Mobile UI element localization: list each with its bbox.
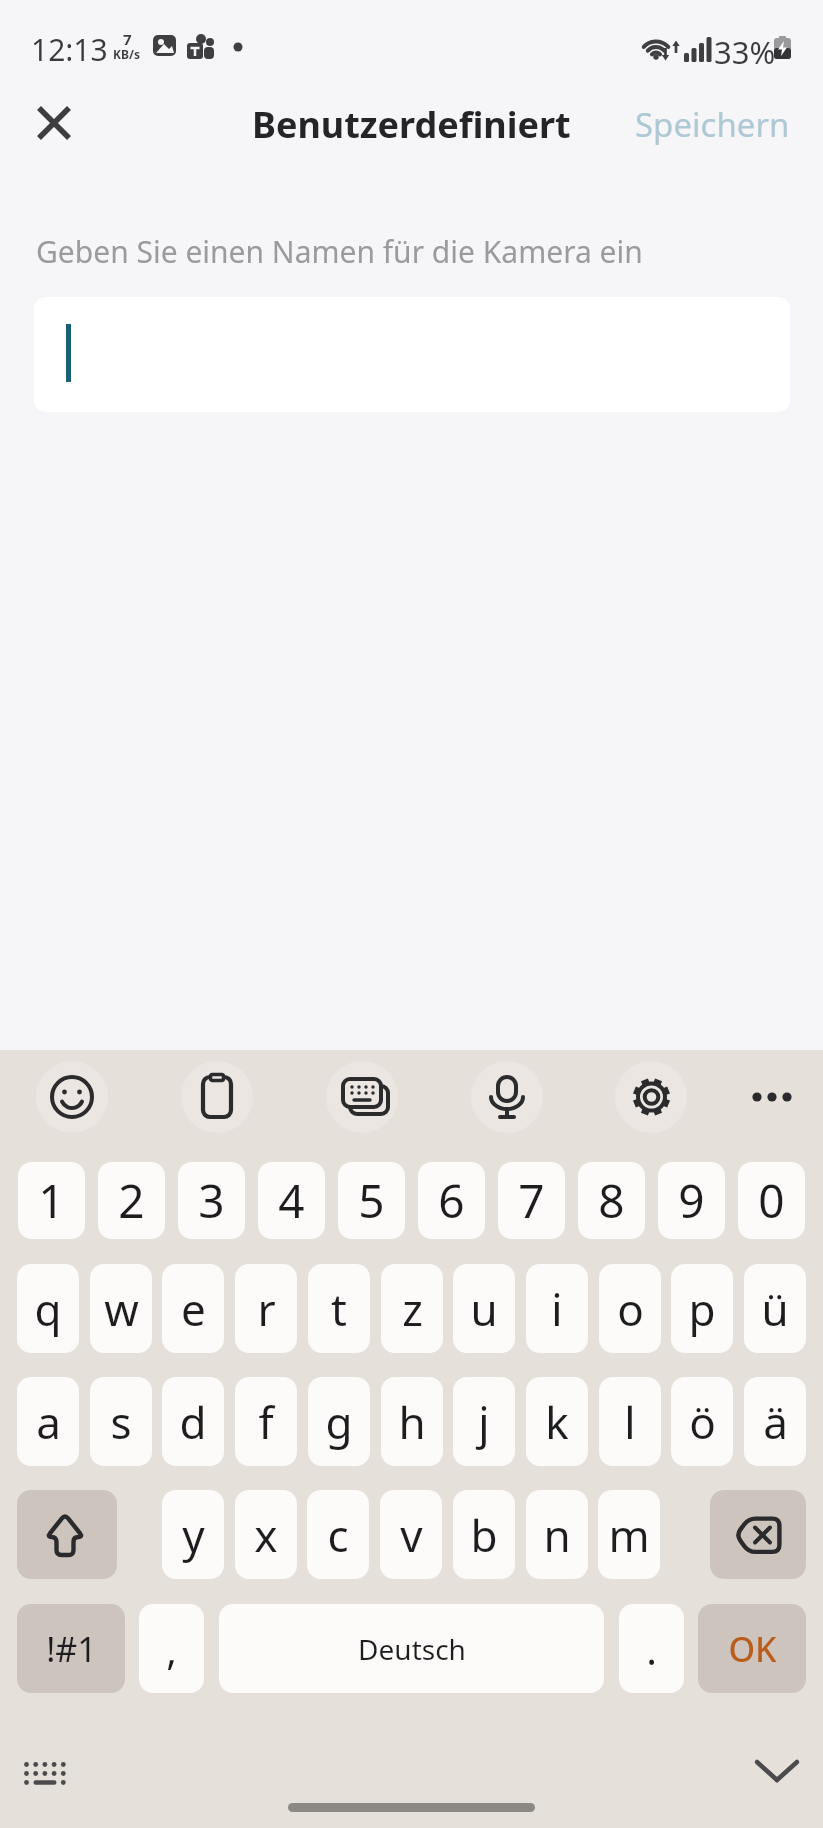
button[interactable]: f <box>235 1377 297 1466</box>
button[interactable]: x <box>235 1490 297 1579</box>
staticText: f <box>258 1392 274 1452</box>
button[interactable]: ö <box>671 1377 733 1466</box>
button[interactable]: 3 <box>178 1162 245 1239</box>
button[interactable] <box>30 99 78 147</box>
staticText: j <box>478 1392 490 1452</box>
button[interactable]: . <box>619 1604 684 1693</box>
staticText: 1 <box>38 1169 65 1232</box>
staticText: p <box>688 1279 716 1339</box>
button[interactable]: u <box>453 1264 515 1353</box>
staticText: x <box>254 1505 278 1565</box>
button[interactable]: w <box>90 1264 152 1353</box>
button[interactable]: 2 <box>98 1162 165 1239</box>
button[interactable] <box>34 297 790 412</box>
button[interactable]: y <box>162 1490 224 1579</box>
staticText: 6 <box>438 1169 465 1232</box>
staticText: l <box>624 1392 636 1452</box>
staticText: 7 <box>123 29 132 49</box>
staticText: 0 <box>758 1169 785 1232</box>
button[interactable]: 1 <box>18 1162 85 1239</box>
button[interactable] <box>36 1061 108 1133</box>
button[interactable]: g <box>308 1377 370 1466</box>
button[interactable] <box>181 1061 253 1133</box>
button[interactable]: q <box>17 1264 79 1353</box>
button[interactable]: Speichern <box>620 100 790 148</box>
button[interactable]: 0 <box>738 1162 805 1239</box>
staticText: z <box>402 1279 423 1339</box>
staticText: . <box>646 1622 657 1676</box>
staticText: w <box>104 1279 139 1339</box>
button[interactable]: 6 <box>418 1162 485 1239</box>
staticText: Speichern <box>635 102 790 147</box>
button[interactable]: 9 <box>658 1162 725 1239</box>
staticText: b <box>470 1505 498 1565</box>
staticText: 3 <box>198 1169 225 1232</box>
button[interactable]: ä <box>744 1377 806 1466</box>
button[interactable] <box>747 1742 809 1798</box>
button[interactable] <box>736 1061 808 1133</box>
button[interactable]: j <box>453 1377 515 1466</box>
staticText: 4 <box>278 1169 305 1232</box>
button[interactable]: k <box>526 1377 588 1466</box>
button[interactable]: 5 <box>338 1162 405 1239</box>
button[interactable]: o <box>599 1264 661 1353</box>
staticText: !#1 <box>46 1626 97 1672</box>
button[interactable]: h <box>381 1377 443 1466</box>
button[interactable] <box>710 1490 806 1579</box>
button[interactable]: Deutsch <box>219 1604 604 1693</box>
button[interactable]: n <box>526 1490 588 1579</box>
staticText: s <box>110 1392 132 1452</box>
button[interactable]: a <box>17 1377 79 1466</box>
button[interactable]: c <box>307 1490 369 1579</box>
button[interactable] <box>326 1061 398 1133</box>
staticText: g <box>325 1392 353 1452</box>
staticText: , <box>166 1622 177 1676</box>
staticText: o <box>617 1279 644 1339</box>
button[interactable]: i <box>526 1264 588 1353</box>
staticText: r <box>257 1279 276 1339</box>
staticText: Benutzerdefiniert <box>252 100 571 148</box>
staticText: ä <box>763 1392 788 1452</box>
button[interactable]: s <box>90 1377 152 1466</box>
staticText: ö <box>689 1392 716 1452</box>
button[interactable]: e <box>162 1264 224 1353</box>
button[interactable]: !#1 <box>17 1604 125 1693</box>
staticText: a <box>36 1392 61 1452</box>
staticText: KB/s <box>113 46 140 62</box>
button[interactable]: ü <box>744 1264 806 1353</box>
button[interactable] <box>14 1742 76 1798</box>
staticText: d <box>179 1392 207 1452</box>
staticText: u <box>470 1279 498 1339</box>
button[interactable]: 8 <box>578 1162 645 1239</box>
button[interactable]: t <box>308 1264 370 1353</box>
staticText: 9 <box>678 1169 705 1232</box>
button[interactable]: OK <box>698 1604 806 1693</box>
staticText: t <box>331 1279 347 1339</box>
staticText: 7 <box>518 1169 545 1232</box>
button[interactable]: z <box>381 1264 443 1353</box>
button[interactable]: m <box>598 1490 660 1579</box>
staticText: c <box>327 1505 349 1565</box>
button[interactable]: v <box>380 1490 442 1579</box>
staticText: y <box>182 1505 205 1565</box>
button[interactable]: r <box>235 1264 297 1353</box>
button[interactable]: b <box>453 1490 515 1579</box>
button[interactable]: d <box>162 1377 224 1466</box>
button[interactable]: , <box>139 1604 204 1693</box>
button[interactable] <box>471 1061 543 1133</box>
staticText: Deutsch <box>358 1630 466 1668</box>
button[interactable] <box>615 1061 687 1133</box>
button[interactable]: 4 <box>258 1162 325 1239</box>
staticText: 5 <box>358 1169 385 1232</box>
staticText: OK <box>728 1626 777 1672</box>
staticText: Geben Sie einen Namen für die Kamera ein <box>36 231 643 272</box>
staticText: i <box>551 1279 563 1339</box>
staticText: 2 <box>118 1169 145 1232</box>
staticText: q <box>34 1279 62 1339</box>
button[interactable] <box>17 1490 117 1579</box>
staticText: 8 <box>598 1169 625 1232</box>
button[interactable]: l <box>599 1377 661 1466</box>
button[interactable]: p <box>671 1264 733 1353</box>
button[interactable]: 7 <box>498 1162 565 1239</box>
staticText: v <box>400 1505 423 1565</box>
